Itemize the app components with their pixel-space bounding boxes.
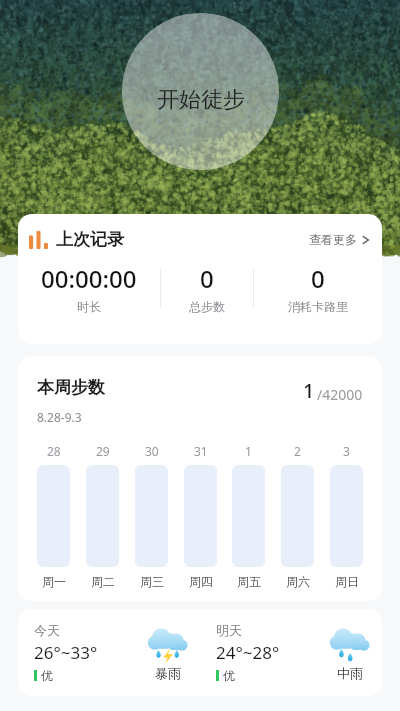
staticText: 0 [311, 262, 325, 295]
staticText: 1 [303, 377, 315, 404]
button[interactable]: 查看更多 [309, 232, 369, 247]
staticText: 周四 [189, 574, 213, 589]
staticText: 31 [194, 443, 208, 459]
staticText: 周一 [42, 574, 66, 589]
staticText: 中雨 [337, 665, 363, 681]
staticText: 30 [145, 443, 159, 459]
staticText: 查看更多 [309, 232, 357, 247]
staticText: 优 [223, 668, 235, 683]
staticText: 2 [294, 443, 301, 459]
staticText: 0 [200, 262, 214, 295]
staticText: 上次记录 [56, 229, 124, 250]
staticText: 本周步数 [37, 377, 105, 398]
staticText: 29 [96, 443, 110, 459]
staticText: /42000 [317, 385, 363, 404]
staticText: 28 [47, 443, 61, 459]
staticText: 总步数 [189, 299, 225, 314]
staticText: 开始徒步 [157, 86, 245, 114]
staticText: 周五 [237, 574, 261, 589]
staticText: 3 [343, 443, 350, 459]
button[interactable]: 今天 [18, 622, 200, 683]
staticText: 暴雨 [155, 665, 181, 681]
staticText: 明天 [216, 622, 242, 638]
staticText: 24°~28° [216, 641, 280, 664]
staticText: 周日 [335, 574, 359, 589]
staticText: 26°~33° [34, 641, 98, 664]
staticText: 优 [41, 668, 53, 683]
staticText: 消耗卡路里 [288, 299, 348, 314]
staticText: 时长 [77, 299, 101, 314]
staticText: 周三 [140, 574, 164, 589]
staticText: 8.28-9.3 [37, 409, 82, 425]
staticText: 00:00:00 [41, 262, 137, 295]
staticText: 1 [245, 443, 252, 459]
button[interactable]: 开始徒步 [122, 13, 279, 170]
staticText: 今天 [34, 622, 60, 638]
staticText: 周二 [91, 574, 115, 589]
button[interactable]: 明天 [200, 622, 382, 683]
staticText: 周六 [286, 574, 310, 589]
